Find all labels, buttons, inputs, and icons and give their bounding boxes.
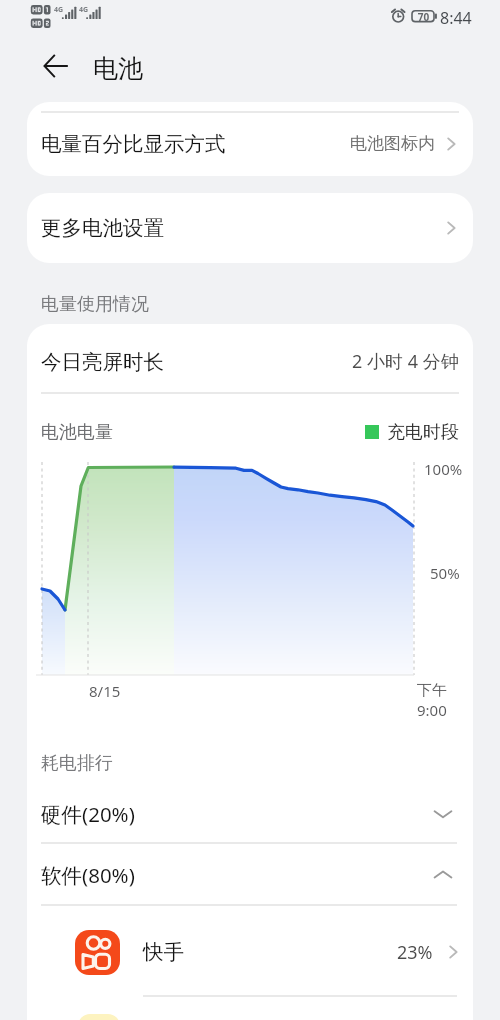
button[interactable]: 今日亮屏时长 — [27, 324, 473, 393]
staticText: 电量百分比显示方式 — [41, 131, 226, 157]
staticText: 充电时段 — [387, 421, 459, 444]
staticText: 电量使用情况 — [41, 293, 149, 316]
staticText: 电池图标内 — [350, 133, 435, 154]
staticText: 快手 — [143, 939, 184, 965]
button[interactable]: 更多电池设置 — [27, 193, 473, 263]
button[interactable]: Back — [34, 44, 78, 88]
staticText: 50% — [430, 563, 460, 583]
button[interactable]: 电量百分比显示方式 — [27, 102, 473, 176]
staticText: 下午 — [417, 681, 447, 700]
staticText: 8:44 — [440, 7, 472, 29]
staticText: 更多电池设置 — [41, 215, 164, 241]
staticText: 电池电量 — [41, 421, 113, 444]
staticText: 70 — [413, 10, 434, 24]
staticText: 软件(80%) — [41, 861, 135, 889]
staticText: 硬件(20%) — [41, 800, 135, 828]
staticText: 耗电排行 — [41, 752, 113, 775]
staticText: 今日亮屏时长 — [41, 349, 164, 375]
staticText: 100% — [424, 459, 463, 479]
staticText: 23% — [397, 940, 433, 965]
staticText: 4G — [54, 5, 64, 15]
button[interactable]: 软件(80%) — [27, 843, 473, 904]
staticText: 2 小时 4 分钟 — [352, 349, 459, 374]
button[interactable]: 快手 — [27, 905, 473, 995]
staticText: 8/15 — [89, 681, 121, 701]
staticText: 电池 — [93, 53, 143, 84]
staticText: 9:00 — [417, 700, 447, 720]
button[interactable]: 硬件(20%) — [27, 782, 473, 842]
staticText: 4G — [79, 5, 89, 15]
